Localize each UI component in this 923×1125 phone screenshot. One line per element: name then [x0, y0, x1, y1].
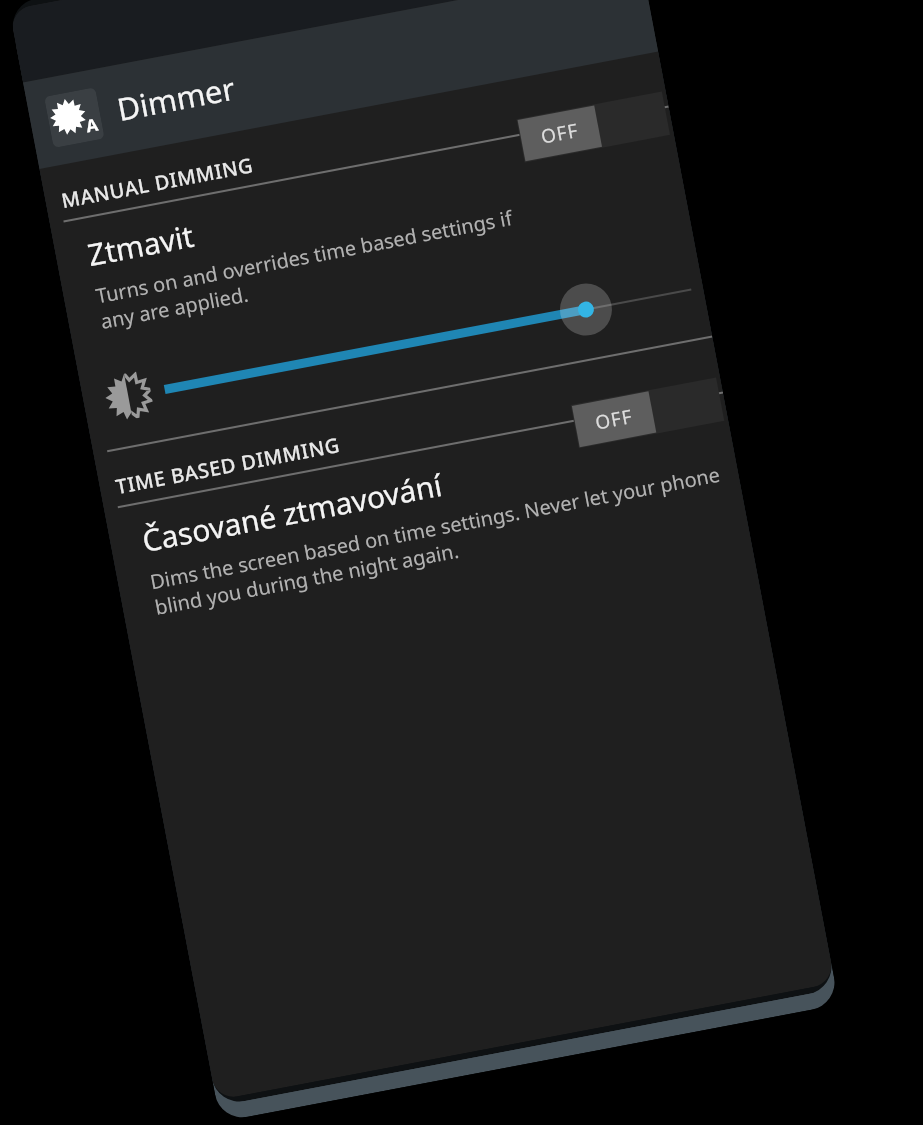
staticText: Turns on and overrides time based settin…: [93, 203, 524, 335]
button[interactable]: Časované ztmavování: [107, 409, 745, 627]
staticText: Dimmer: [114, 67, 238, 130]
staticText: OFF: [593, 403, 635, 435]
staticText: Ztmavit: [84, 215, 197, 275]
button[interactable]: Toggle off: [516, 92, 670, 162]
staticText: A: [84, 112, 100, 137]
button[interactable]: Ztmavit: [53, 123, 691, 341]
staticText: MANUAL DIMMING: [59, 151, 256, 214]
staticText: Časované ztmavování: [139, 464, 445, 561]
staticText: TIME BASED DIMMING: [113, 431, 342, 500]
button[interactable]: Toggle off: [571, 377, 724, 448]
staticText: OFF: [539, 117, 581, 150]
button[interactable]: [77, 249, 710, 443]
staticText: Dims the screen based on time settings. …: [148, 459, 733, 621]
button[interactable]: A: [23, 0, 658, 169]
